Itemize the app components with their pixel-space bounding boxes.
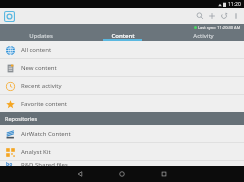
button[interactable]: box: [0, 161, 244, 166]
button[interactable]: Back: [59, 166, 101, 182]
staticText: AirWatch Content: [21, 130, 71, 138]
button[interactable]: Analyst Kit: [0, 143, 244, 160]
button[interactable]: Recent activity: [0, 77, 244, 94]
staticText: Updates: [29, 32, 53, 40]
staticText: Favorite content: [21, 100, 67, 108]
button[interactable]: AirWatch Content: [0, 125, 244, 142]
button[interactable]: Content: [82, 30, 163, 41]
staticText: Recent activity: [21, 82, 62, 90]
staticText: box: [6, 161, 15, 166]
button[interactable]: All content: [0, 41, 244, 58]
button[interactable]: App logo: [3, 10, 16, 23]
staticText: New content: [21, 64, 57, 72]
button[interactable]: Recent apps: [143, 166, 185, 182]
button[interactable]: Sync: [218, 8, 230, 24]
staticText: R&D Shared files: [21, 161, 68, 166]
staticText: All content: [21, 46, 52, 54]
staticText: Activity: [193, 32, 214, 40]
staticText: Last sync: 11:20:30 AM: [198, 25, 241, 30]
button[interactable]: Activity: [163, 30, 244, 41]
button[interactable]: More options: [230, 8, 242, 24]
button[interactable]: Updates: [0, 30, 82, 41]
button[interactable]: Search: [194, 8, 206, 24]
staticText: Content: [111, 32, 135, 40]
button[interactable]: New content: [0, 59, 244, 76]
button[interactable]: Favorite content: [0, 95, 244, 112]
staticText: 11:20: [228, 1, 241, 8]
staticText: Analyst Kit: [21, 148, 51, 156]
button[interactable]: Home: [101, 166, 143, 182]
staticText: Repositories: [5, 115, 38, 122]
button[interactable]: Add: [206, 8, 218, 24]
